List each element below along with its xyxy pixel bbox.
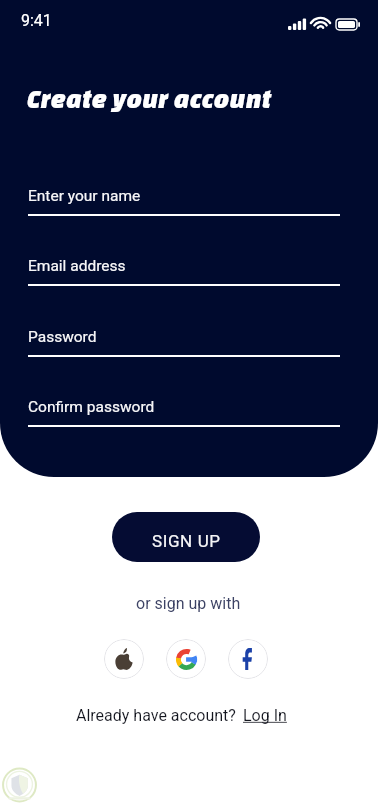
- staticText: Log In: [243, 706, 287, 725]
- staticText: Create your account: [27, 84, 272, 113]
- staticText: Email address: [28, 257, 126, 275]
- staticText: Enter your name: [28, 187, 141, 205]
- button[interactable]: Confirm password: [28, 385, 340, 427]
- button[interactable]: Sign up with Apple: [104, 639, 144, 679]
- staticText: 9:41: [21, 11, 52, 30]
- button[interactable]: Enter your name: [28, 174, 340, 216]
- staticText: SIGN UP: [152, 531, 221, 551]
- staticText: or sign up with: [136, 594, 241, 613]
- button[interactable]: Password: [28, 315, 340, 357]
- button[interactable]: SIGN UP: [112, 512, 260, 562]
- staticText: Already have account?: [76, 706, 236, 725]
- button[interactable]: Sign up with Google: [166, 639, 206, 679]
- staticText: Password: [28, 328, 97, 346]
- staticText: Confirm password: [28, 398, 155, 416]
- button[interactable]: Log In: [243, 706, 287, 725]
- button[interactable]: Sign up with Facebook: [228, 639, 268, 679]
- button[interactable]: Email address: [28, 244, 340, 286]
